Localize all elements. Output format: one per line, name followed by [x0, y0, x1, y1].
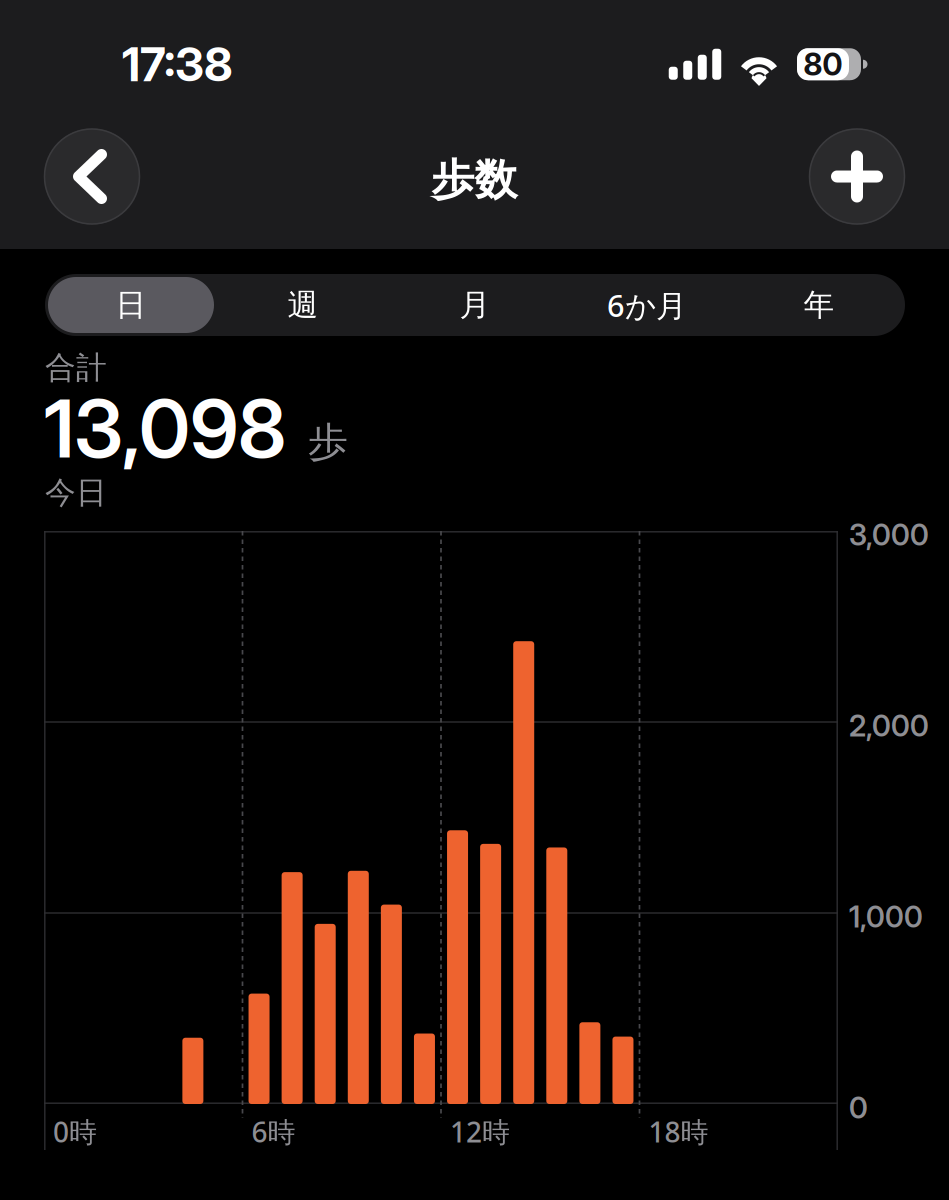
staticText: 今日	[45, 474, 107, 512]
button[interactable]: 戻る	[44, 128, 140, 224]
button[interactable]: データを追加	[809, 128, 905, 224]
button[interactable]: 6か月	[561, 274, 733, 336]
staticText: 年	[803, 286, 834, 324]
staticText: 80	[803, 46, 842, 83]
staticText: 3,000	[849, 517, 929, 552]
staticText: 週	[287, 286, 318, 324]
staticText: 6か月	[607, 285, 687, 325]
staticText: 17:38	[122, 36, 233, 92]
staticText: 合計	[45, 349, 107, 387]
staticText: 1,000	[849, 899, 923, 934]
staticText: 歩数	[431, 154, 517, 206]
staticText: 0時	[53, 1113, 97, 1150]
button[interactable]: 月	[389, 274, 561, 336]
button[interactable]: 年	[733, 274, 905, 336]
staticText: 0	[849, 1090, 868, 1125]
staticText: 6時	[251, 1113, 295, 1150]
staticText: 13,098	[44, 380, 286, 477]
staticText: 歩	[308, 418, 348, 467]
button[interactable]: 日	[45, 274, 217, 336]
button[interactable]: 週	[217, 274, 389, 336]
staticText: 18時	[648, 1113, 708, 1150]
staticText: 日	[115, 286, 146, 324]
staticText: 月	[459, 286, 490, 324]
staticText: 2,000	[849, 708, 929, 743]
staticText: 12時	[450, 1113, 510, 1150]
